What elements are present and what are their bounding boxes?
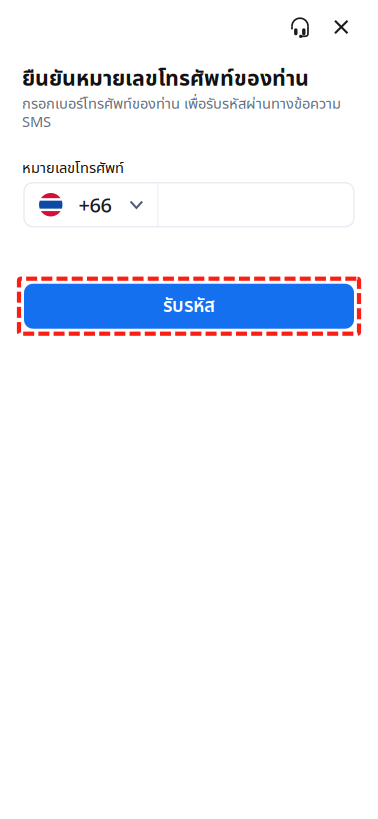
staticText: รับรหัส [163, 292, 215, 320]
button[interactable]: Close [328, 13, 354, 40]
staticText: กรอกเบอร์โทรศัพท์ของท่าน เพื่อรับรหัสผ่า… [22, 93, 341, 133]
button[interactable]: Contact support [287, 12, 312, 41]
button[interactable]: Country code +66 [24, 183, 157, 227]
staticText: +66 [78, 191, 111, 218]
staticText: หมายเลขโทรศัพท์ [22, 158, 124, 180]
button[interactable]: รับรหัส [24, 284, 354, 329]
staticText: ยืนยันหมายเลขโทรศัพท์ของท่าน [22, 63, 309, 95]
